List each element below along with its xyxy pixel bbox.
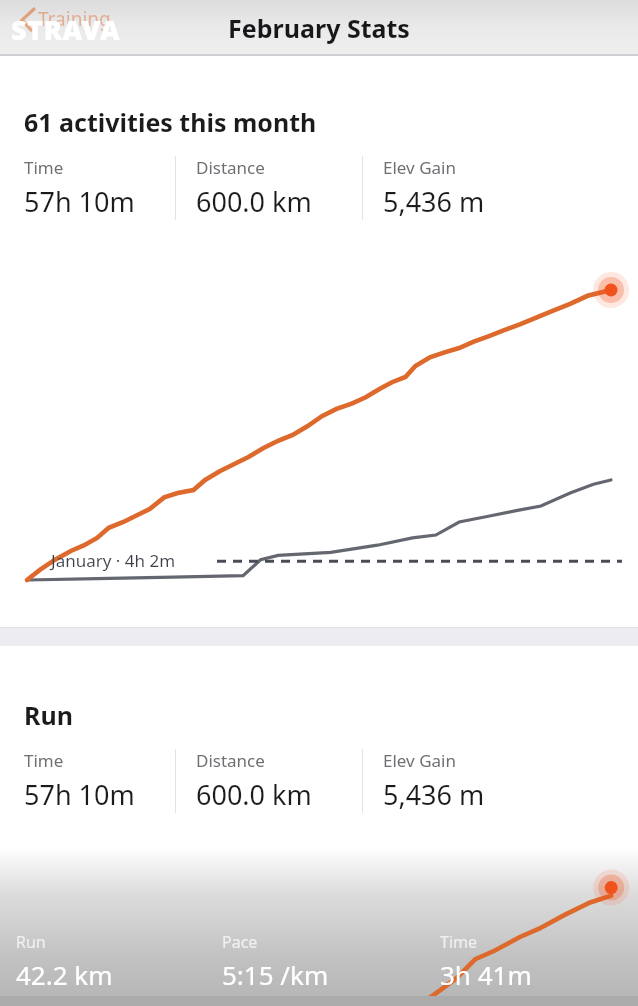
staticText: 57h 10m <box>24 776 135 813</box>
staticText: Training <box>38 6 111 32</box>
staticText: 5,436 m <box>383 776 485 813</box>
staticText: Run <box>24 698 73 732</box>
staticText: 57h 10m <box>24 183 135 220</box>
staticText: February Stats <box>0 11 638 45</box>
staticText: January · 4h 2m <box>51 549 176 572</box>
staticText: Time <box>24 156 64 179</box>
staticText: 5,436 m <box>383 183 485 220</box>
staticText: 5:15 /km <box>222 957 329 992</box>
staticText: 3h 41m <box>440 957 532 992</box>
staticText: Time <box>440 931 478 953</box>
staticText: Distance <box>196 749 265 772</box>
staticText: Time <box>24 749 64 772</box>
staticText: 42.2 km <box>16 957 113 992</box>
staticText: Elev Gain <box>383 156 456 179</box>
staticText: 600.0 km <box>196 183 312 220</box>
staticText: 600.0 km <box>196 776 312 813</box>
staticText: Elev Gain <box>383 749 456 772</box>
staticText: 61 activities this month <box>24 105 317 139</box>
staticText: STRAVA <box>11 11 121 48</box>
staticText: Run <box>16 931 46 953</box>
staticText: Pace <box>222 931 258 953</box>
staticText: Distance <box>196 156 265 179</box>
